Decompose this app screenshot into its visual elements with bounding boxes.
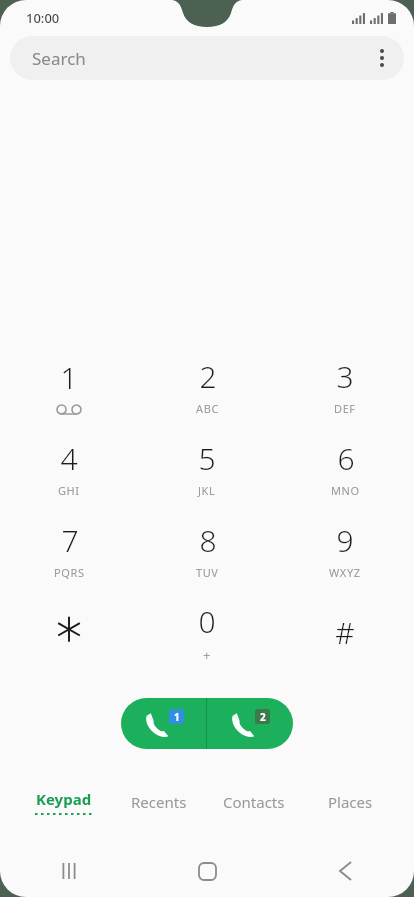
staticText: 2	[260, 710, 266, 724]
button[interactable]: Recents	[111, 784, 206, 820]
button[interactable]: 0	[138, 594, 276, 676]
staticText: 1	[60, 357, 78, 398]
button[interactable]: More options	[360, 36, 404, 80]
staticText: Recents	[131, 792, 187, 812]
button[interactable]	[0, 594, 138, 676]
button[interactable]: 8	[138, 512, 276, 594]
staticText: 7	[61, 520, 79, 561]
staticText: 4	[60, 438, 78, 479]
button[interactable]: 3	[276, 348, 414, 430]
staticText: 6	[337, 438, 355, 479]
button[interactable]: Contacts	[206, 784, 302, 820]
staticText: DEF	[334, 401, 356, 416]
staticText: JKL	[198, 483, 216, 498]
staticText: Keypad	[36, 789, 92, 809]
staticText: 8	[199, 520, 217, 561]
staticText: Places	[328, 792, 373, 812]
button[interactable]: 1	[0, 348, 138, 430]
button[interactable]: 4	[0, 430, 138, 512]
staticText: Search	[32, 47, 86, 70]
button[interactable]: 9	[276, 512, 414, 594]
staticText: WXYZ	[329, 565, 361, 580]
staticText: 3	[336, 356, 354, 397]
button[interactable]: Call with SIM 2	[207, 698, 293, 749]
staticText: 5	[198, 438, 216, 479]
staticText: Contacts	[223, 792, 285, 812]
button[interactable]: 5	[138, 430, 276, 512]
staticText: #	[335, 612, 355, 653]
button[interactable]: 7	[0, 512, 138, 594]
staticText: 10:00	[26, 9, 60, 27]
button[interactable]: Back	[276, 845, 414, 897]
button[interactable]: Call with SIM 1	[121, 698, 206, 749]
staticText: GHI	[58, 483, 80, 498]
button[interactable]: #	[276, 594, 414, 676]
button[interactable]: 6	[276, 430, 414, 512]
button[interactable]: 2	[138, 348, 276, 430]
staticText: TUV	[196, 565, 219, 580]
button[interactable]: Search	[10, 36, 404, 80]
staticText: PQRS	[54, 565, 85, 580]
staticText: ABC	[196, 401, 219, 416]
staticText: 2	[199, 356, 217, 397]
button[interactable]: Keypad	[16, 784, 111, 820]
staticText: 9	[336, 520, 354, 561]
button[interactable]: Home	[138, 845, 276, 897]
staticText: MNO	[331, 483, 360, 498]
staticText: 1	[174, 710, 180, 724]
staticText: 0	[198, 601, 216, 642]
button[interactable]: Places	[302, 784, 398, 820]
button[interactable]: Recent apps	[0, 845, 138, 897]
staticText: +	[203, 646, 212, 664]
